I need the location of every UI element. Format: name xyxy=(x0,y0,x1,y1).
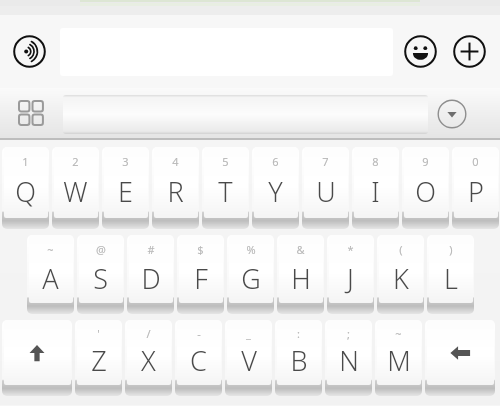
staticText: - xyxy=(197,326,201,341)
button[interactable]: Apps xyxy=(0,88,63,140)
button[interactable]: Backspace xyxy=(425,320,495,396)
staticText: ) xyxy=(449,242,453,257)
staticText: T xyxy=(218,173,233,210)
staticText: P xyxy=(468,173,484,210)
staticText: G xyxy=(241,260,261,297)
button[interactable]: Z xyxy=(75,320,122,396)
button[interactable]: V xyxy=(225,320,272,396)
staticText: C xyxy=(190,342,207,379)
button[interactable]: B xyxy=(275,320,322,396)
staticText: 5 xyxy=(222,154,229,169)
staticText: N xyxy=(339,342,359,379)
button[interactable]: Add attachment xyxy=(453,35,486,68)
staticText: M xyxy=(387,342,411,379)
staticText: / xyxy=(146,326,151,341)
staticText: L xyxy=(444,260,458,297)
staticText: ' xyxy=(97,326,100,341)
staticText: 2 xyxy=(72,154,79,169)
button[interactable]: W xyxy=(52,147,99,229)
button[interactable]: K xyxy=(377,235,424,314)
staticText: : xyxy=(297,326,300,341)
button[interactable]: C xyxy=(175,320,222,396)
staticText: A xyxy=(42,260,59,297)
staticText: 8 xyxy=(372,154,379,169)
staticText: 1 xyxy=(22,154,29,169)
staticText: ~ xyxy=(395,326,402,341)
staticText: 6 xyxy=(272,154,279,169)
button[interactable]: O xyxy=(402,147,449,229)
button[interactable]: N xyxy=(325,320,372,396)
staticText: * xyxy=(347,242,354,257)
button[interactable]: T xyxy=(202,147,249,229)
staticText: R xyxy=(167,173,184,210)
staticText: H xyxy=(291,260,311,297)
staticText: W xyxy=(63,173,88,210)
staticText: D xyxy=(141,260,161,297)
button[interactable]: P xyxy=(452,147,499,229)
staticText: 7 xyxy=(322,154,329,169)
staticText: K xyxy=(393,260,409,297)
staticText: E xyxy=(118,173,133,210)
button[interactable]: E xyxy=(102,147,149,229)
button[interactable]: L xyxy=(427,235,474,314)
button[interactable]: M xyxy=(375,320,422,396)
button[interactable]: D xyxy=(127,235,174,314)
button[interactable]: Voice input xyxy=(13,35,46,68)
button[interactable]: R xyxy=(152,147,199,229)
button[interactable]: G xyxy=(227,235,274,314)
staticText: & xyxy=(296,242,305,257)
staticText: Q xyxy=(15,173,36,210)
staticText: 0 xyxy=(472,154,479,169)
button[interactable]: J xyxy=(327,235,374,314)
button[interactable]: Emoji xyxy=(404,35,437,68)
button[interactable]: Y xyxy=(252,147,299,229)
staticText: B xyxy=(290,342,308,379)
staticText: J xyxy=(347,260,354,297)
staticText: Z xyxy=(91,342,107,379)
staticText: I xyxy=(371,173,380,210)
button[interactable]: X xyxy=(125,320,172,396)
staticText: U xyxy=(316,173,336,210)
button[interactable]: I xyxy=(352,147,399,229)
staticText: F xyxy=(194,260,208,297)
staticText: Y xyxy=(268,173,283,210)
staticText: S xyxy=(93,260,108,297)
staticText: @ xyxy=(96,242,106,257)
staticText: ( xyxy=(399,242,403,257)
staticText: 3 xyxy=(122,154,129,169)
staticText: # xyxy=(147,242,155,257)
staticText: ; xyxy=(347,326,350,341)
staticText: 9 xyxy=(422,154,429,169)
button[interactable] xyxy=(63,95,428,134)
button[interactable]: Collapse keyboard xyxy=(437,99,467,129)
button[interactable]: F xyxy=(177,235,224,314)
staticText: _ xyxy=(246,326,251,341)
button[interactable]: Shift xyxy=(2,320,72,396)
staticText: 4 xyxy=(172,154,179,169)
button[interactable]: A xyxy=(27,235,74,314)
button[interactable]: S xyxy=(77,235,124,314)
staticText: % xyxy=(246,242,256,257)
button[interactable]: U xyxy=(302,147,349,229)
button[interactable]: H xyxy=(277,235,324,314)
staticText: $ xyxy=(197,242,204,257)
staticText: O xyxy=(415,173,436,210)
staticText: X xyxy=(141,342,156,379)
button[interactable]: Q xyxy=(2,147,49,229)
staticText: V xyxy=(241,342,257,379)
staticText: ~ xyxy=(47,242,54,257)
